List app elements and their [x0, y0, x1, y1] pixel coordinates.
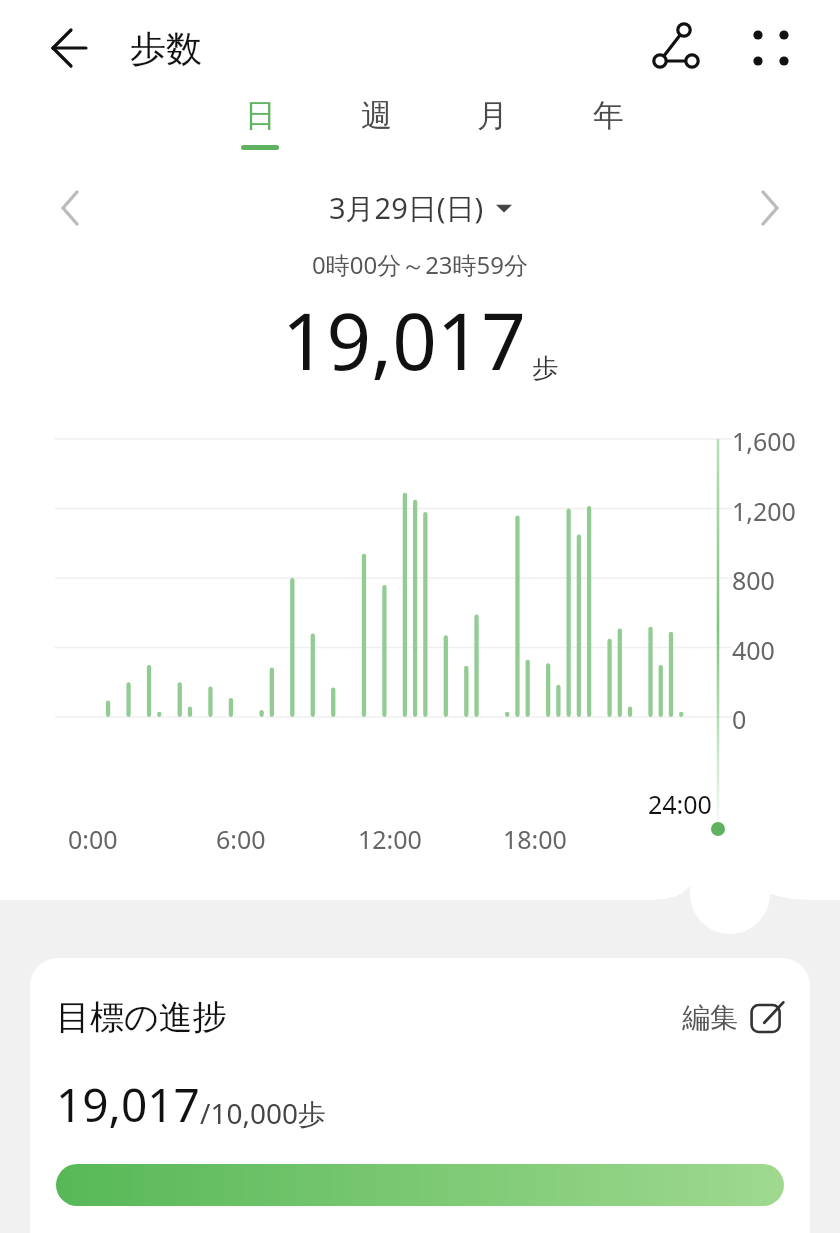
staticText: 0:00: [68, 822, 118, 856]
staticText: 0: [732, 702, 747, 736]
staticText: 1,200: [732, 494, 796, 528]
staticText: /10,000歩: [200, 1094, 327, 1132]
staticText: 日: [245, 96, 276, 135]
button[interactable]: Share: [644, 16, 708, 80]
staticText: 編集: [682, 1000, 738, 1035]
staticText: 6:00: [216, 822, 266, 856]
staticText: 1,600: [732, 424, 796, 458]
staticText: 800: [732, 563, 775, 597]
staticText: 年: [593, 96, 624, 135]
button[interactable]: More options: [740, 17, 802, 79]
button[interactable]: Back: [42, 20, 98, 76]
staticText: 3月29日(日): [329, 188, 484, 228]
staticText: 0時00分～23時59分: [0, 248, 840, 281]
button[interactable]: Next day: [744, 182, 796, 234]
staticText: 月: [477, 96, 508, 135]
staticText: 目標の進捗: [56, 996, 227, 1039]
staticText: 400: [732, 633, 775, 667]
staticText: 19,017: [282, 287, 526, 393]
staticText: 歩: [532, 352, 558, 385]
staticText: 19,017: [56, 1073, 200, 1136]
staticText: 12:00: [358, 822, 422, 856]
staticText: 歩数: [130, 26, 202, 71]
button[interactable]: 週: [344, 96, 408, 150]
button[interactable]: 月: [460, 96, 524, 150]
button[interactable]: 年: [576, 96, 640, 150]
button[interactable]: 編集: [682, 1000, 784, 1035]
button[interactable]: 日: [228, 96, 292, 150]
button[interactable]: Previous day: [44, 182, 96, 234]
staticText: 週: [361, 96, 392, 135]
staticText: 24:00: [648, 787, 712, 821]
button[interactable]: 3月29日(日): [329, 188, 512, 228]
staticText: 18:00: [503, 822, 567, 856]
